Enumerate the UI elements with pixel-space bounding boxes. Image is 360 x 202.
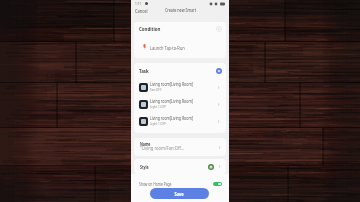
staticText: Cancel — [135, 7, 148, 14]
button[interactable]: Name — [140, 138, 222, 156]
button[interactable]: Save — [150, 188, 209, 199]
staticText: 1:11 — [135, 1, 142, 7]
staticText: Show on Home Page — [139, 181, 172, 187]
button[interactable]: Living room[Living Room] — [139, 113, 221, 130]
staticText: Style — [140, 164, 149, 170]
staticText: Task — [139, 67, 149, 75]
staticText: Launch Tap-to-Run — [150, 44, 185, 51]
staticText: Name — [140, 141, 151, 147]
button[interactable]: Add task — [216, 68, 222, 74]
button[interactable]: Add condition — [216, 26, 222, 32]
button[interactable]: Style — [140, 159, 222, 174]
button[interactable]: Launch Tap-to-Run — [143, 36, 226, 58]
staticText: Fan:OFF — [150, 87, 162, 92]
staticText: Living room[Living Room] — [150, 98, 193, 104]
button[interactable]: Living room[Living Room] — [139, 96, 221, 113]
button[interactable]: Show on Home Page — [139, 179, 222, 189]
staticText: Living room[Living Room] — [150, 115, 193, 121]
staticText: Save — [175, 190, 184, 197]
staticText: Light 1:OFF — [150, 104, 167, 109]
staticText: Light 1:OFF — [150, 121, 167, 126]
staticText: "Living room/Fan:Off... — [140, 145, 185, 151]
staticText: Condition — [139, 25, 161, 33]
button[interactable]: Living room[Living Room] — [139, 79, 221, 96]
staticText: Create new Smart — [165, 7, 196, 14]
staticText: Living room[Living Room] — [150, 81, 193, 87]
button[interactable]: Cancel — [135, 7, 152, 14]
